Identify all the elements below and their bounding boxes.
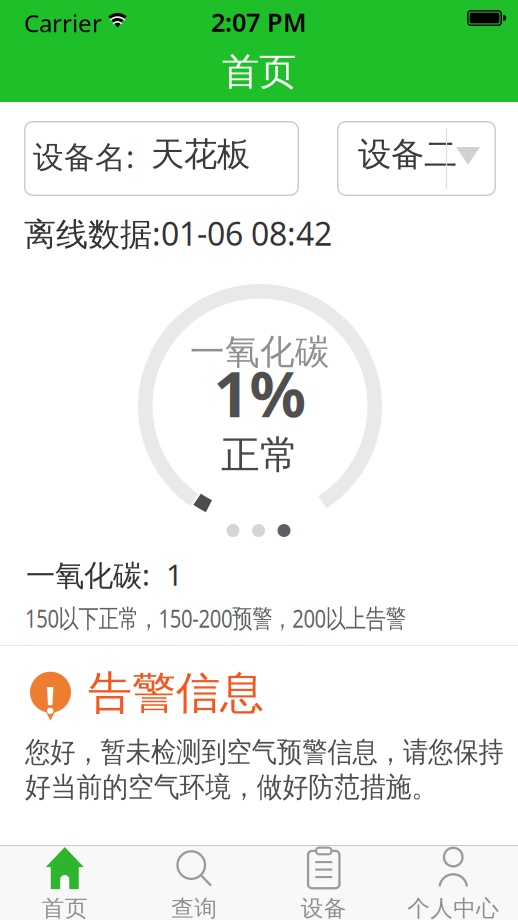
button[interactable]: 设备	[259, 846, 388, 920]
button[interactable]: 首页	[0, 846, 129, 920]
button[interactable]: 查询	[129, 846, 259, 920]
staticText: 个人中心	[407, 895, 499, 920]
staticText: 150以下正常，150-200预警，200以上告警	[25, 601, 501, 635]
button[interactable]: 个人中心	[388, 846, 518, 920]
button[interactable]: 选择设备	[337, 121, 496, 196]
staticText: 设备名:	[33, 136, 134, 177]
staticText: 查询	[171, 895, 217, 920]
staticText: 首页	[42, 895, 88, 920]
staticText: !	[45, 675, 56, 724]
staticText: 设备二	[358, 134, 457, 175]
staticText: 离线数据:01-06 08:42	[24, 212, 332, 254]
staticText: 一氧化碳: 1	[26, 555, 183, 594]
staticText: 正常	[221, 431, 299, 479]
staticText: 1%	[213, 351, 306, 435]
staticText: Carrier	[24, 7, 102, 39]
button[interactable]: 设备名:	[24, 121, 299, 196]
staticText: 设备	[301, 895, 347, 920]
staticText: 您好，暂未检测到空气预警信息，请您保持	[25, 735, 518, 769]
staticText: 天花板	[151, 134, 250, 175]
staticText: 好当前的空气环境，做好防范措施。	[25, 770, 473, 804]
staticText: 告警信息	[88, 666, 264, 720]
staticText: 一氧化碳	[190, 331, 330, 373]
staticText: 首页	[222, 49, 296, 95]
staticText: 2:07 PM	[211, 5, 307, 39]
